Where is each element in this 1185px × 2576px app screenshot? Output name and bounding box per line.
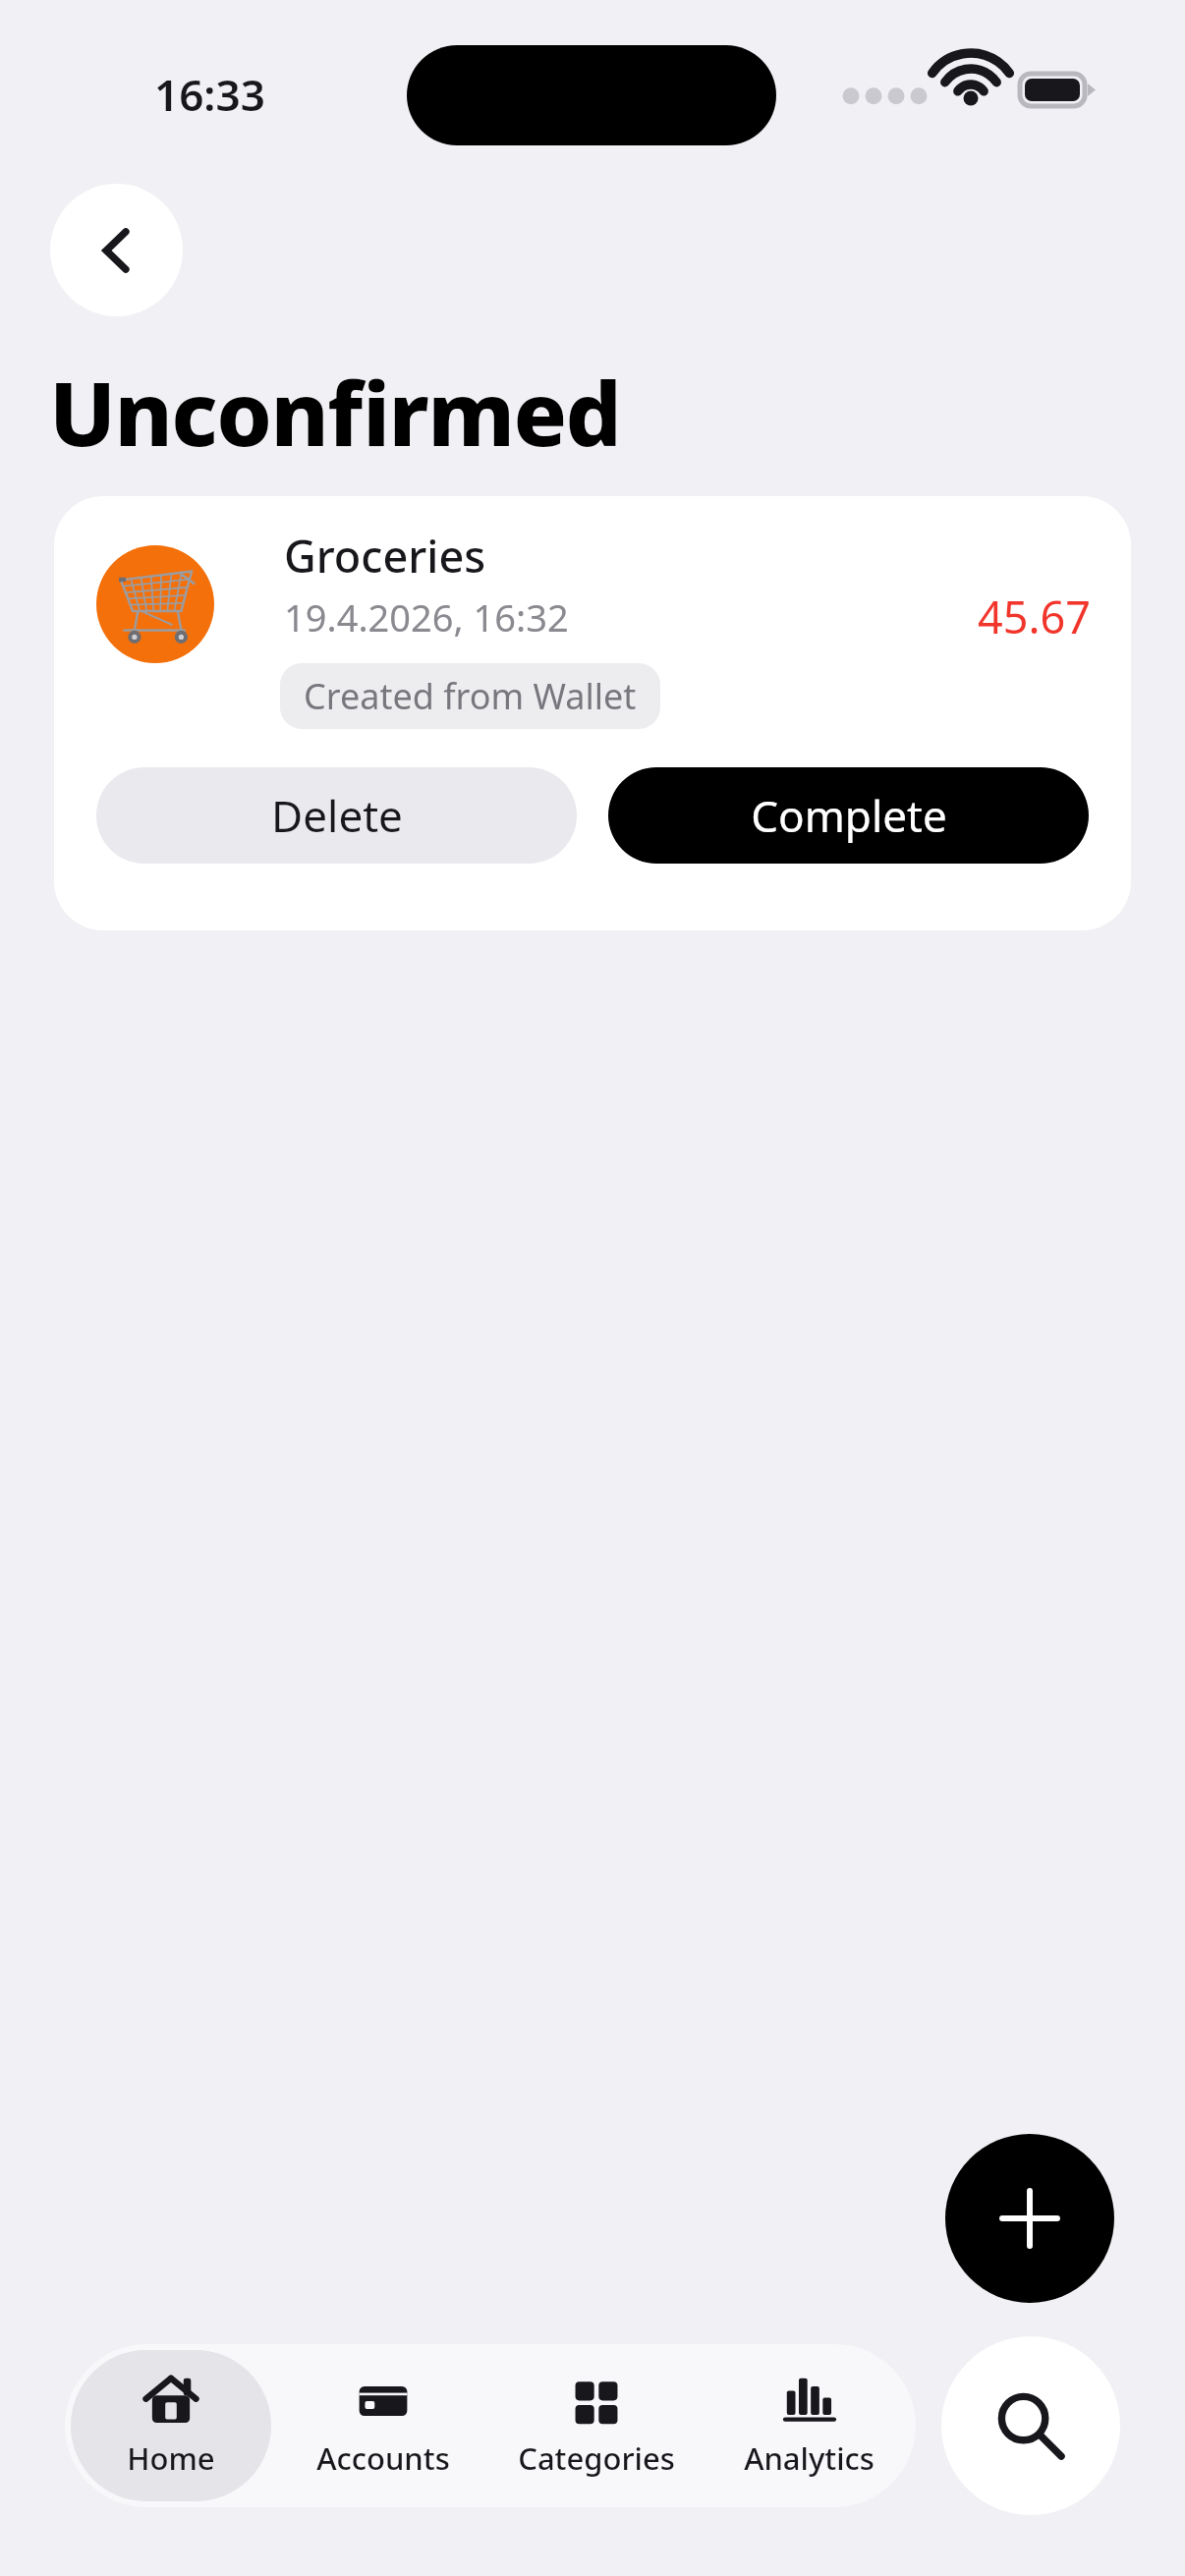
staticText: Analytics — [744, 2437, 875, 2479]
button[interactable]: Categories — [495, 2350, 697, 2501]
button[interactable]: Add — [945, 2134, 1114, 2303]
staticText: Delete — [271, 786, 403, 845]
staticText: Groceries — [284, 526, 486, 586]
button[interactable]: Back — [50, 184, 183, 316]
staticText: Accounts — [316, 2437, 450, 2479]
button[interactable]: Home — [71, 2350, 271, 2501]
staticText: Home — [127, 2437, 215, 2479]
button[interactable]: Search — [941, 2336, 1120, 2515]
button[interactable]: Delete — [96, 767, 577, 864]
staticText: Complete — [751, 786, 947, 845]
staticText: 19.4.2026, 16:32 — [284, 591, 569, 643]
staticText: 45.67 — [978, 587, 1092, 646]
button[interactable]: Analytics — [708, 2350, 910, 2501]
staticText: Categories — [518, 2437, 675, 2479]
staticText: 16:33 — [154, 65, 265, 124]
staticText: Created from Wallet — [304, 672, 637, 720]
button[interactable]: Accounts — [283, 2350, 483, 2501]
staticText: Unconfirmed — [49, 352, 621, 473]
button[interactable]: Complete — [608, 767, 1089, 864]
